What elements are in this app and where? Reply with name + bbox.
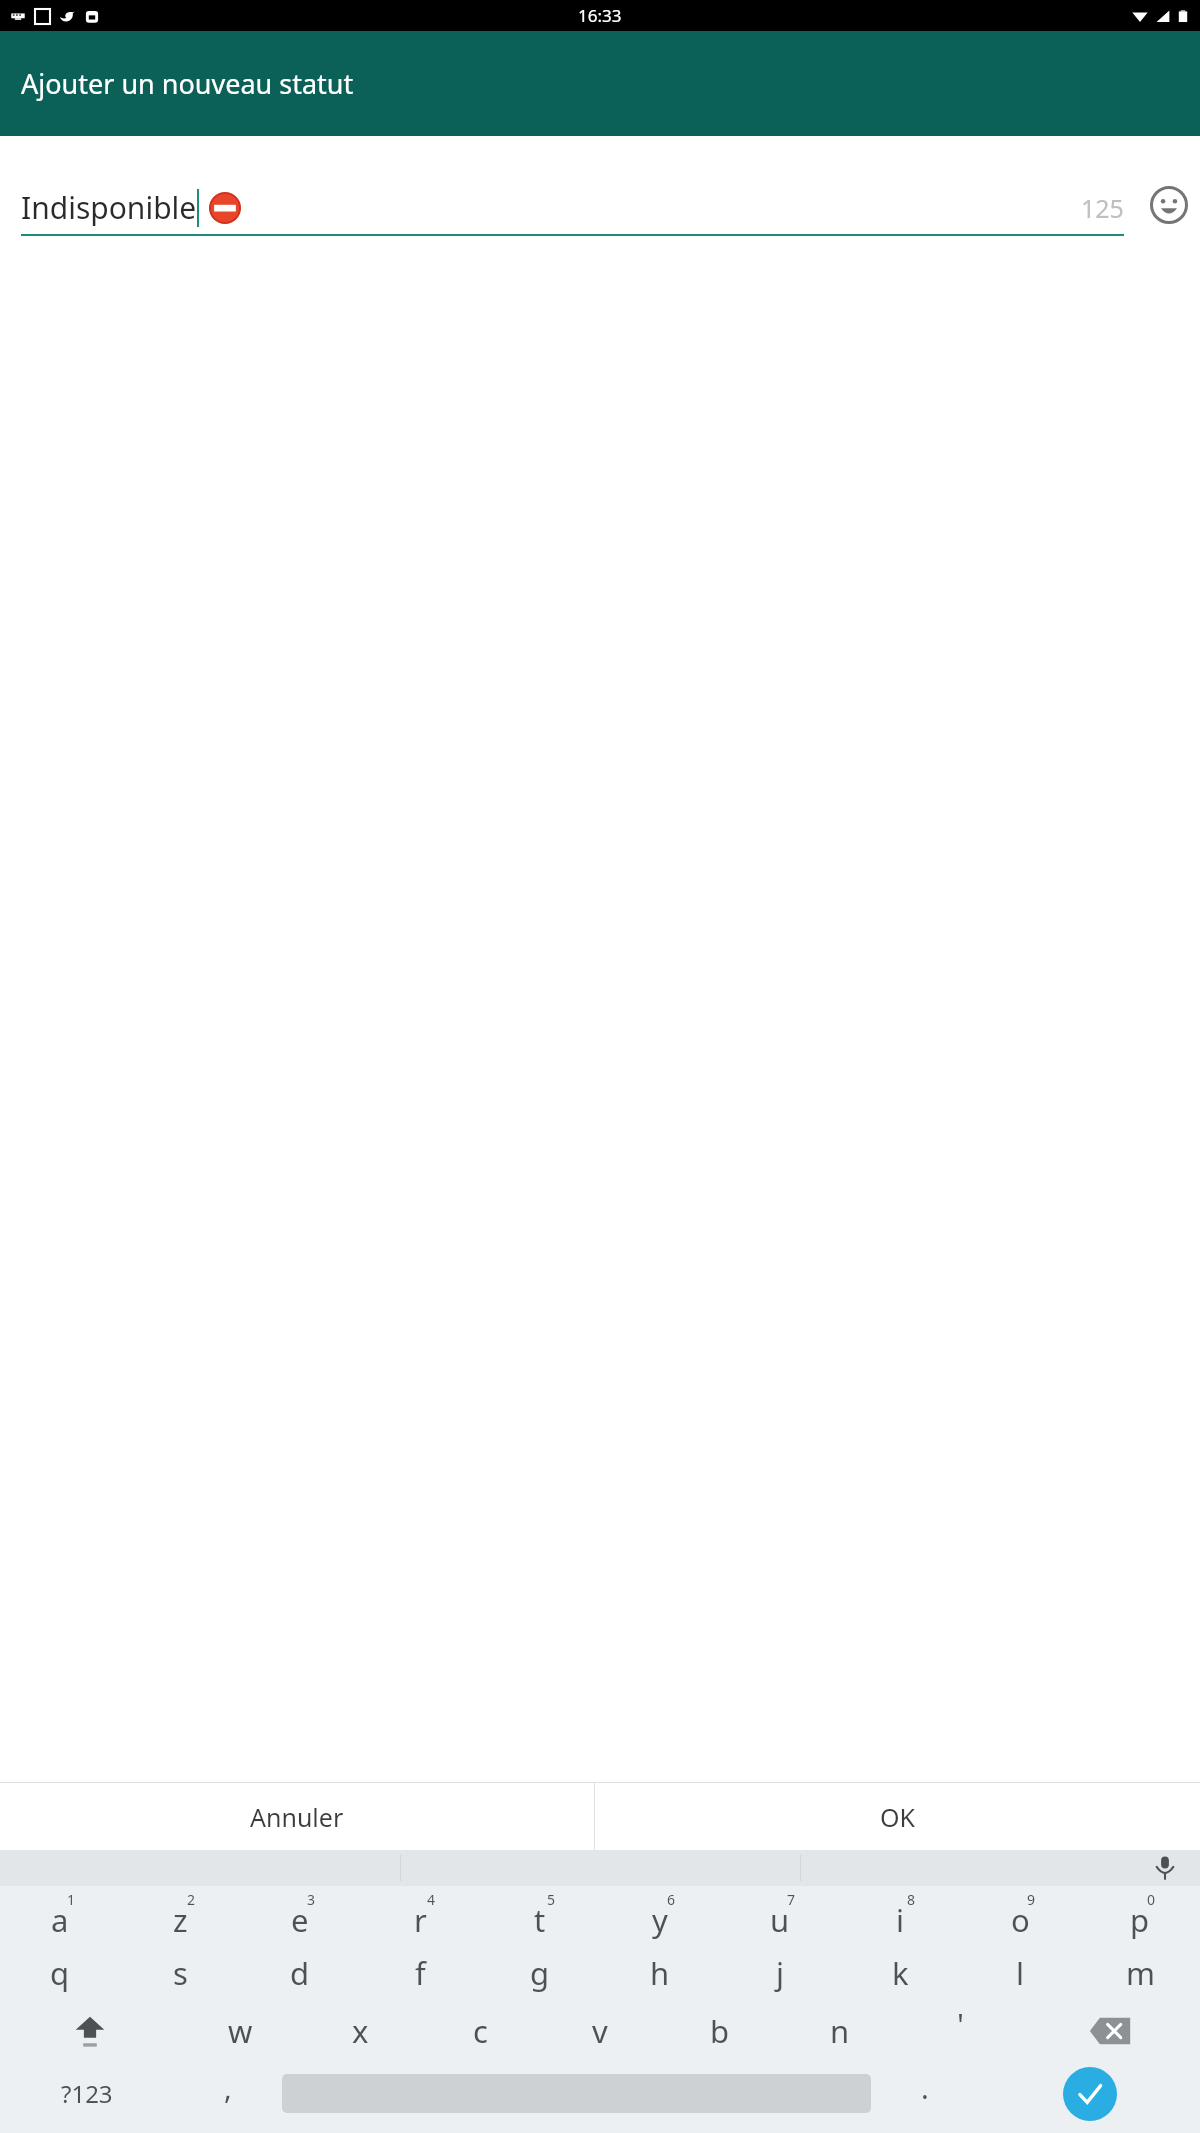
button[interactable]: Ajouter un nouveau statut: [0, 31, 1200, 136]
staticText: d: [290, 1952, 310, 1994]
staticText: 7: [787, 1890, 796, 1909]
staticText: Indisponible: [21, 187, 197, 228]
button[interactable]: 0: [1080, 1886, 1200, 1944]
button[interactable]: b: [660, 2002, 780, 2060]
button[interactable]: .: [871, 2060, 979, 2127]
button[interactable]: w: [180, 2002, 300, 2060]
button[interactable]: Annuler: [0, 1783, 594, 1850]
staticText: Ajouter un nouveau statut: [21, 65, 354, 102]
button[interactable]: 3: [240, 1886, 360, 1944]
button[interactable]: k: [840, 1944, 960, 2002]
button[interactable]: c: [420, 2002, 540, 2060]
button[interactable]: s: [120, 1944, 240, 2002]
button[interactable]: 9: [960, 1886, 1080, 1944]
staticText: p: [1130, 1899, 1150, 1941]
staticText: i: [896, 1899, 904, 1941]
staticText: t: [534, 1899, 546, 1941]
button[interactable]: 5: [480, 1886, 600, 1944]
button[interactable]: q: [0, 1944, 120, 2002]
staticText: 0: [1147, 1890, 1156, 1909]
button[interactable]: Enter: [979, 2060, 1200, 2127]
button[interactable]: x: [300, 2002, 420, 2060]
button[interactable]: 7: [720, 1886, 840, 1944]
staticText: 9: [1027, 1890, 1036, 1909]
staticText: l: [1016, 1952, 1024, 1994]
button[interactable]: ': [900, 2002, 1020, 2060]
button[interactable]: f: [360, 1944, 480, 2002]
staticText: z: [173, 1899, 188, 1941]
staticText: a: [51, 1899, 69, 1941]
staticText: h: [650, 1952, 670, 1994]
staticText: 5: [547, 1890, 556, 1909]
button[interactable]: Emoji: [1138, 174, 1200, 236]
staticText: .: [921, 2068, 929, 2107]
staticText: 4: [427, 1890, 436, 1909]
staticText: k: [892, 1952, 909, 1994]
button[interactable]: Voice input: [1150, 1853, 1180, 1883]
button[interactable]: j: [720, 1944, 840, 2002]
button[interactable]: m: [1080, 1944, 1200, 2002]
staticText: 1: [67, 1890, 76, 1909]
button[interactable]: OK: [595, 1783, 1200, 1850]
button[interactable]: 1: [0, 1886, 120, 1944]
button[interactable]: 8: [840, 1886, 960, 1944]
staticText: ?123: [61, 2077, 113, 2110]
staticText: ,: [224, 2068, 232, 2107]
button[interactable]: 6: [600, 1886, 720, 1944]
button[interactable]: Shift: [0, 2002, 180, 2060]
staticText: o: [1011, 1899, 1030, 1941]
staticText: m: [1126, 1952, 1155, 1994]
button[interactable]: n: [780, 2002, 900, 2060]
staticText: 3: [307, 1890, 316, 1909]
button[interactable]: g: [480, 1944, 600, 2002]
staticText: e: [291, 1899, 309, 1941]
staticText: q: [50, 1952, 70, 1994]
button[interactable]: v: [540, 2002, 660, 2060]
staticText: f: [415, 1952, 426, 1994]
staticText: j: [776, 1952, 784, 1994]
staticText: Annuler: [250, 1800, 344, 1834]
staticText: 6: [667, 1890, 676, 1909]
button[interactable]: Backspace: [1020, 2002, 1200, 2060]
staticText: 16:33: [578, 4, 622, 27]
staticText: g: [530, 1952, 550, 1994]
staticText: r: [414, 1899, 427, 1941]
staticText: n: [830, 2010, 850, 2052]
button[interactable]: ,: [174, 2060, 282, 2127]
staticText: w: [228, 2010, 253, 2052]
staticText: v: [592, 2010, 608, 2052]
staticText: y: [652, 1899, 668, 1941]
button[interactable]: d: [240, 1944, 360, 2002]
staticText: 8: [907, 1890, 916, 1909]
staticText: u: [770, 1899, 790, 1941]
button[interactable]: l: [960, 1944, 1080, 2002]
staticText: 2: [187, 1890, 196, 1909]
button[interactable]: h: [600, 1944, 720, 2002]
button[interactable]: 2: [120, 1886, 240, 1944]
staticText: s: [173, 1952, 188, 1994]
staticText: OK: [880, 1800, 916, 1834]
staticText: b: [710, 2010, 730, 2052]
staticText: ': [957, 2003, 964, 2045]
button[interactable]: ?123: [0, 2060, 174, 2127]
staticText: x: [352, 2010, 369, 2052]
button[interactable]: 4: [360, 1886, 480, 1944]
staticText: c: [473, 2010, 488, 2052]
staticText: 125: [1081, 191, 1124, 225]
